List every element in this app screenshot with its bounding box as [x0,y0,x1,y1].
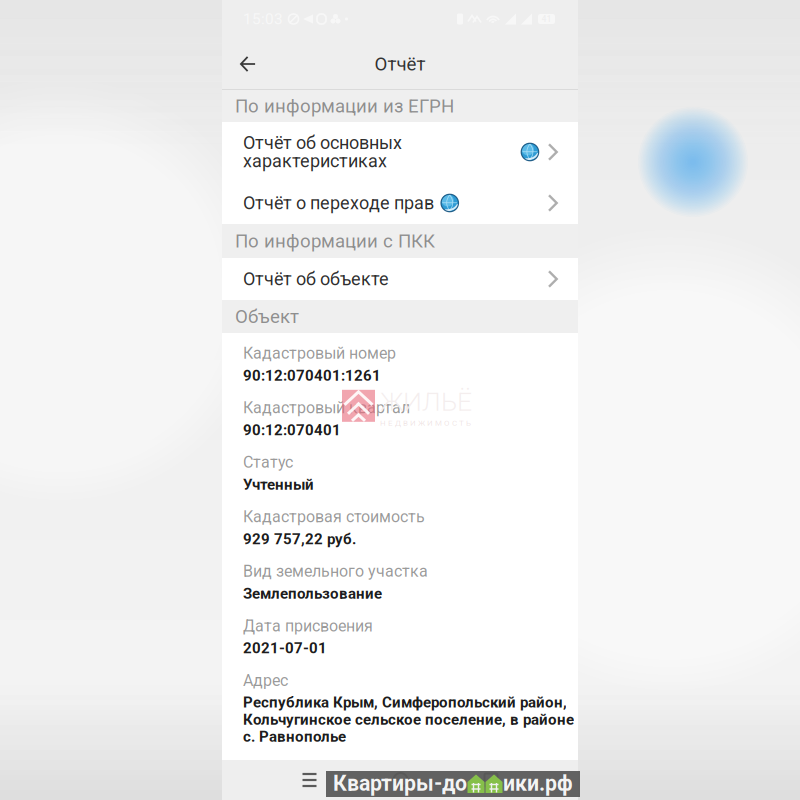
button[interactable]: Домой [381,761,419,799]
staticText: Республика Крым, Симферопольский район, … [243,694,574,745]
staticText: ЖИЛЬЁ [380,386,472,417]
staticText: Кадастровый квартал [243,398,410,417]
staticText: Квартиры-до [333,771,467,796]
button[interactable]: Меню [290,761,328,799]
staticText: 929 757,22 руб. [243,530,356,548]
button[interactable]: Отчёт об объекте [222,258,578,300]
staticText: По информации из ЕГРН [235,95,454,117]
staticText: Землепользование [243,585,382,602]
staticText: Статус [243,453,293,472]
staticText: Дата присвоения [243,616,373,635]
staticText: Учтенный [243,476,314,493]
staticText: Адрес [243,671,288,690]
staticText: 41 [541,14,551,24]
staticText: Кадастровая стоимость [243,507,425,526]
staticText: Отчёт [374,53,425,75]
staticText: Отчёт об основных характеристиках [243,134,402,170]
staticText: По информации с ПКК [235,230,435,252]
staticText: ики.рф [503,771,573,796]
staticText: Кадастровый номер [243,344,396,363]
staticText: Отчёт о переходе прав [243,192,434,214]
staticText: Отчёт об объекте [243,268,389,290]
staticText: Н Е Д В И Ж И М О С Т Ь [380,418,471,428]
button[interactable]: Отчёт о переходе прав [222,182,578,224]
staticText: 2021-07-01 [243,639,327,657]
button[interactable]: Назад [228,44,268,84]
button[interactable]: Отчёт об основных характеристиках [222,122,578,182]
staticText: 90:12:070401 [243,421,341,439]
button[interactable]: Недавние [472,761,509,798]
staticText: Вид земельного участка [243,562,428,581]
staticText: 90:12:070401:1261 [243,367,381,384]
staticText: Объект [235,306,299,327]
